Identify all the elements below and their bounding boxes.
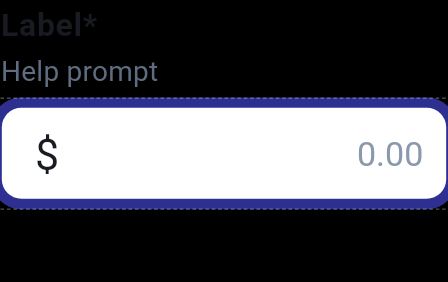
button[interactable]: $: [0, 97, 448, 209]
staticText: 0.00: [357, 134, 424, 174]
staticText: Help prompt: [1, 55, 159, 88]
staticText: $: [35, 130, 60, 180]
staticText: Label*: [1, 6, 98, 44]
